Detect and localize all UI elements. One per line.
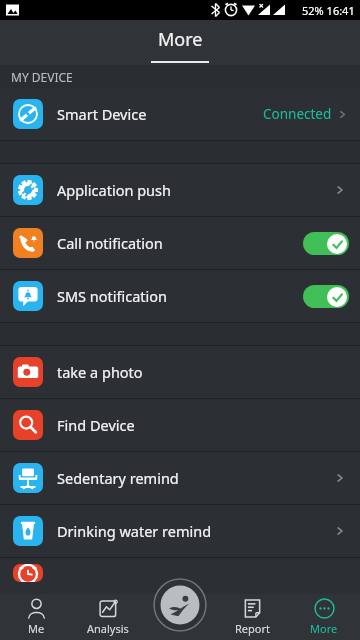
button[interactable]: Application push xyxy=(0,164,360,216)
button[interactable]: Drinking water remind xyxy=(0,505,360,557)
staticText: 52% 16:41 xyxy=(302,3,355,18)
button[interactable]: Start activity xyxy=(153,578,207,632)
staticText: SMS notification xyxy=(57,286,303,306)
staticText: take a photo xyxy=(57,362,348,382)
button[interactable]: Report xyxy=(216,594,288,640)
button[interactable]: SMS notification xyxy=(0,270,360,322)
staticText: More xyxy=(310,621,338,636)
staticText: Smart Device xyxy=(57,104,263,124)
staticText: Application push xyxy=(57,180,334,200)
staticText: Analysis xyxy=(87,621,129,636)
staticText: Call notification xyxy=(57,233,303,253)
button[interactable]: Find Device xyxy=(0,399,360,451)
button[interactable]: Sedentary remind xyxy=(0,452,360,504)
staticText: Find Device xyxy=(57,415,348,435)
button[interactable]: Call notification xyxy=(0,217,360,269)
button[interactable]: Toggle on xyxy=(303,232,349,255)
staticText: Drinking water remind xyxy=(57,521,334,541)
button[interactable]: More xyxy=(288,594,360,640)
staticText: Report xyxy=(235,621,270,636)
button[interactable]: Smart Device xyxy=(0,88,360,140)
button[interactable]: Toggle on xyxy=(303,285,349,308)
staticText: Sedentary remind xyxy=(57,468,334,488)
staticText: Me xyxy=(28,621,45,636)
staticText: Connected xyxy=(263,105,332,123)
button[interactable]: Me xyxy=(0,594,72,640)
button[interactable]: Analysis xyxy=(72,594,144,640)
button[interactable]: take a photo xyxy=(0,346,360,398)
staticText: MY DEVICE xyxy=(11,69,73,85)
staticText: More xyxy=(158,27,203,52)
